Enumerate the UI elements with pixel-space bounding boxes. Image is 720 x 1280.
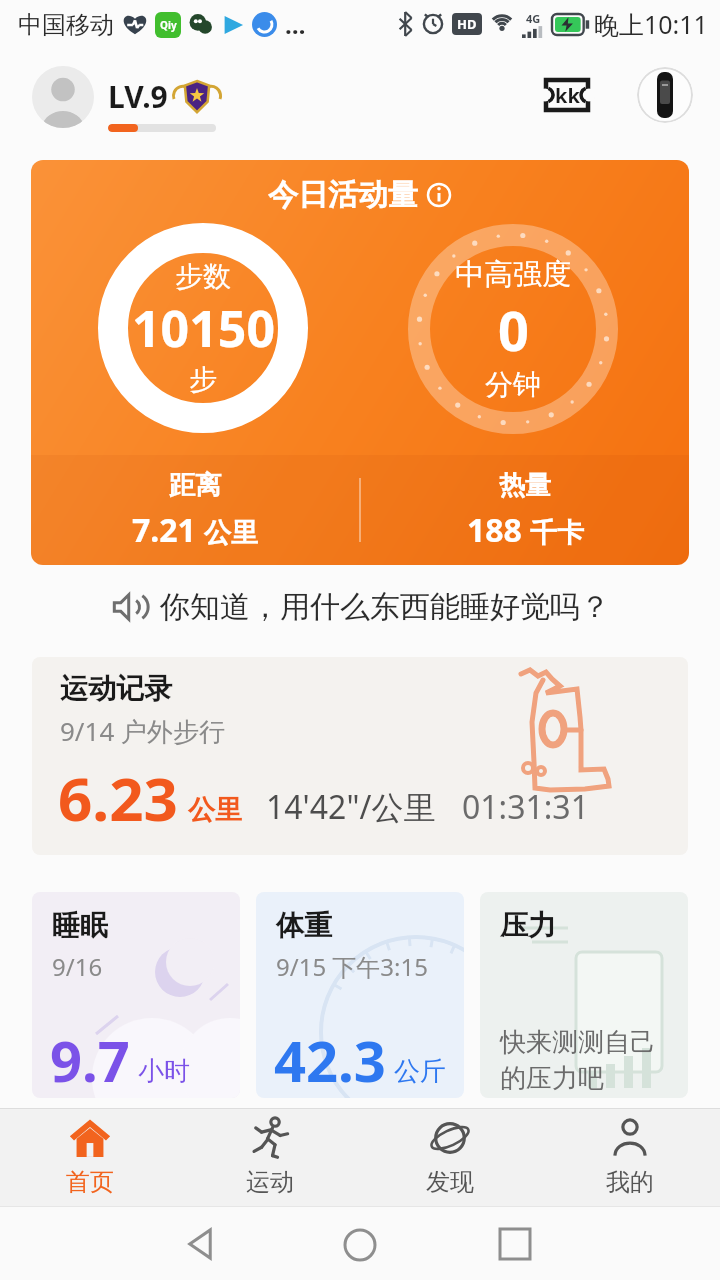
staticText: 你知道，用什么东西能睡好觉吗？ — [160, 588, 610, 626]
staticText: 运动 — [246, 1167, 294, 1197]
button[interactable]: 睡眠 — [32, 892, 240, 1098]
staticText: 首页 — [66, 1167, 114, 1197]
staticText: 分钟 — [485, 367, 541, 402]
button[interactable]: 今日活动量 — [31, 160, 689, 565]
staticText: 01:31:31 — [462, 785, 589, 829]
button[interactable]: kk — [544, 78, 590, 112]
staticText: 188 — [467, 508, 522, 552]
button[interactable]: 首页 — [0, 1108, 180, 1206]
staticText: 公里 — [188, 793, 242, 827]
staticText: 9/14 户外步行 — [60, 713, 226, 749]
staticText: 今日活动量 — [268, 176, 418, 214]
button[interactable] — [184, 1228, 216, 1260]
staticText: … — [285, 8, 306, 41]
staticText: 0 — [498, 293, 529, 367]
staticText: 睡眠 — [52, 908, 108, 943]
staticText: 压力 — [500, 908, 556, 943]
staticText: 7.21 — [132, 508, 196, 552]
button[interactable]: 我的 — [540, 1108, 720, 1206]
staticText: 体重 — [276, 908, 332, 943]
staticText: 公斤 — [394, 1055, 446, 1088]
staticText: Qiy — [160, 18, 177, 32]
staticText: 我的 — [606, 1167, 654, 1197]
staticText: 发现 — [426, 1167, 474, 1197]
staticText: kk — [555, 82, 580, 109]
staticText: 千卡 — [530, 516, 584, 550]
staticText: 9/16 — [52, 950, 103, 983]
button[interactable]: 运动记录 — [32, 657, 688, 855]
button[interactable]: 压力 — [480, 892, 688, 1098]
staticText: 10150 — [132, 294, 275, 362]
staticText: LV.9 — [108, 76, 168, 117]
staticText: 距离 — [169, 469, 221, 502]
staticText: 42.3 — [274, 1022, 386, 1098]
button[interactable]: 体重 — [256, 892, 464, 1098]
staticText: 小时 — [138, 1055, 190, 1088]
staticText: 运动记录 — [60, 671, 172, 706]
staticText: 的压力吧 — [500, 1062, 604, 1095]
staticText: 9.7 — [50, 1022, 130, 1098]
button[interactable]: 发现 — [360, 1108, 540, 1206]
button[interactable] — [343, 1228, 377, 1262]
staticText: 中国移动 — [18, 10, 114, 40]
staticText: 4G — [526, 11, 541, 26]
button[interactable]: 运动 — [180, 1108, 360, 1206]
button[interactable]: 你知道，用什么东西能睡好觉吗？ — [0, 585, 720, 629]
staticText: 中高强度 — [455, 256, 571, 293]
staticText: 热量 — [499, 469, 551, 502]
staticText: 晚上10:11 — [594, 7, 708, 41]
button[interactable] — [32, 66, 94, 128]
staticText: 6.23 — [58, 757, 178, 839]
staticText: 9/15 下午3:15 — [276, 950, 428, 983]
button[interactable] — [637, 67, 693, 123]
staticText: 步 — [189, 362, 217, 397]
button[interactable] — [500, 1229, 530, 1259]
staticText: HD — [457, 15, 477, 33]
staticText: 步数 — [175, 259, 231, 294]
staticText: 14'42"/公里 — [266, 785, 436, 829]
staticText: 公里 — [204, 516, 258, 550]
staticText: 快来测测自己 — [500, 1026, 656, 1059]
